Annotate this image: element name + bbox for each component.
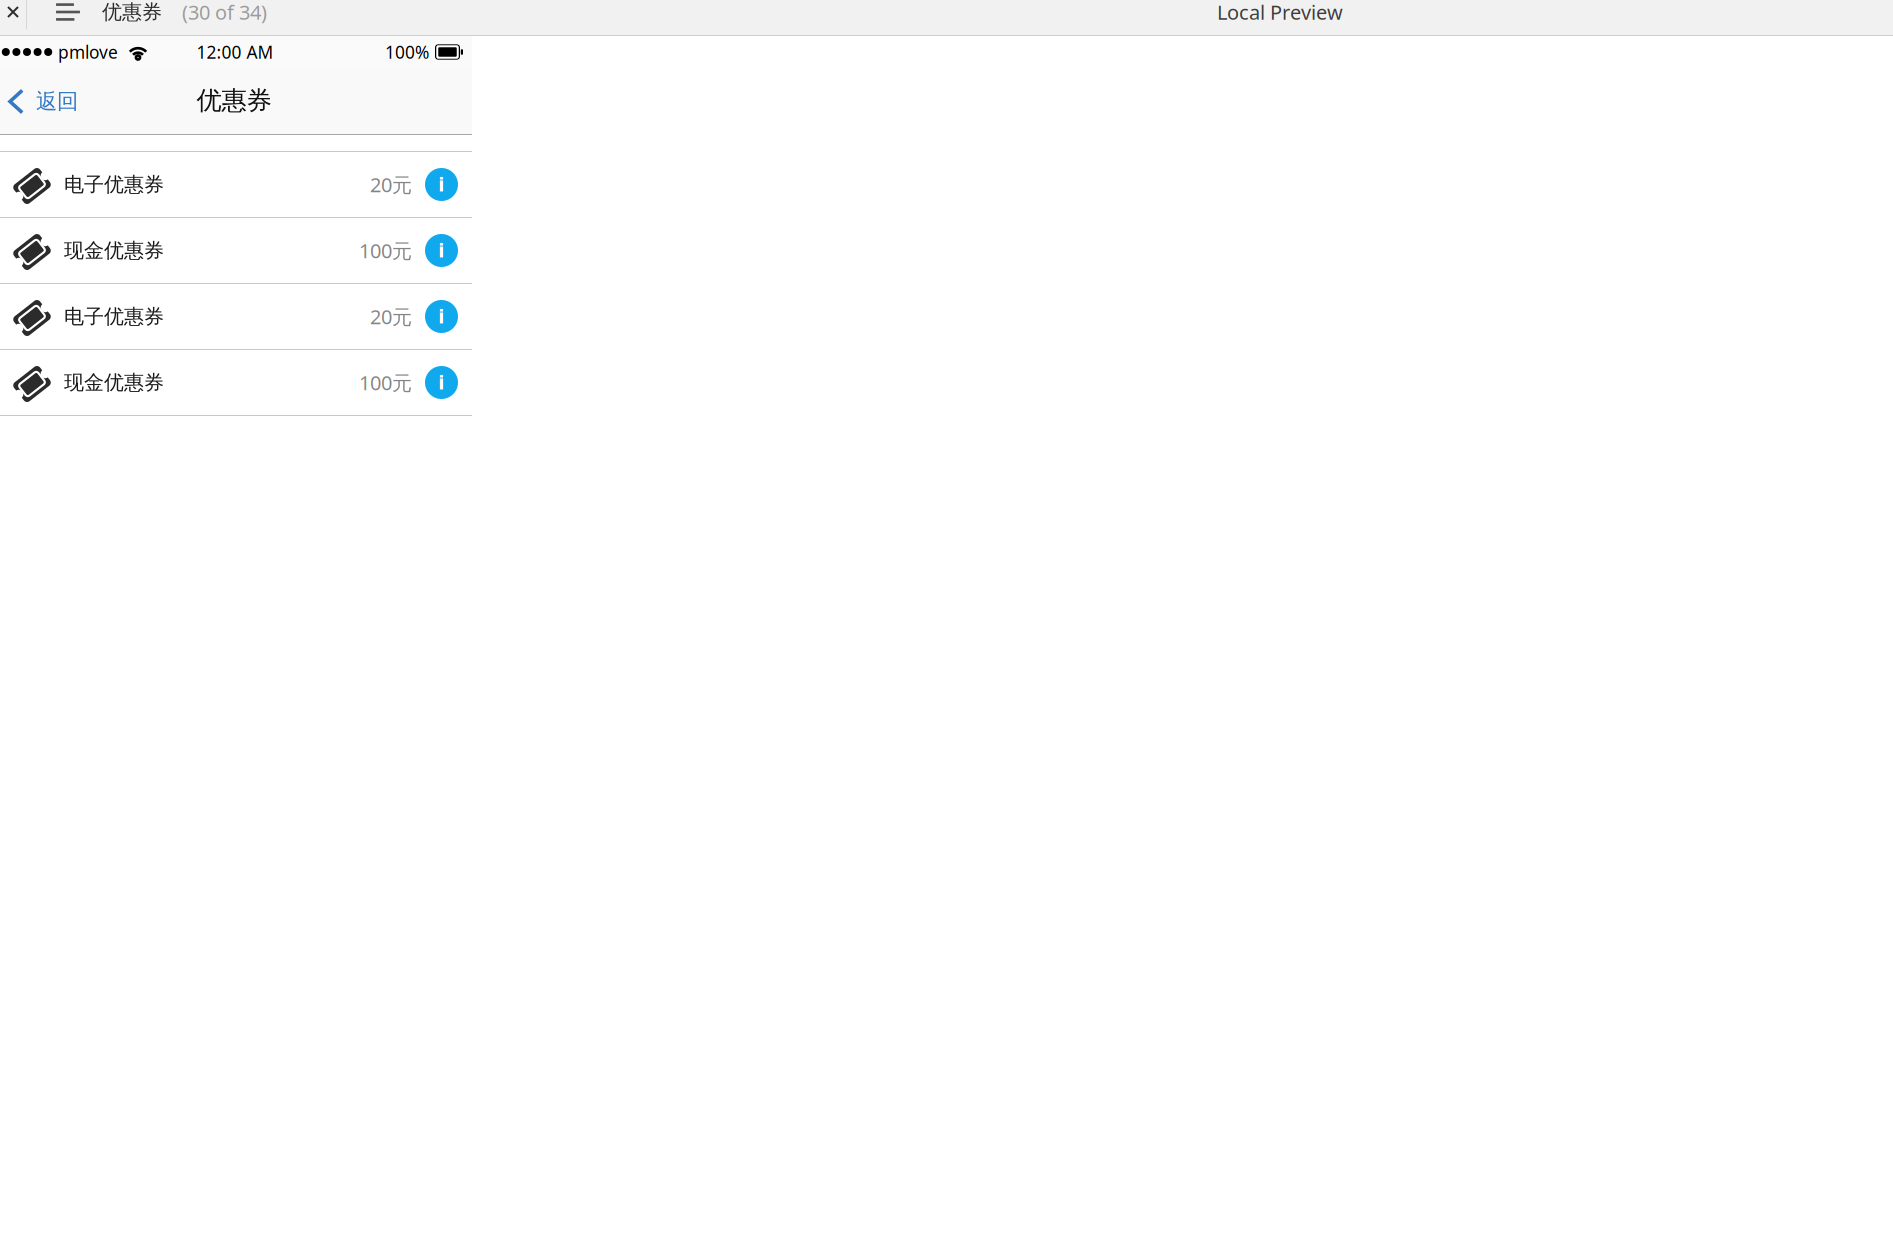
staticText: 100元: [359, 369, 412, 396]
staticText: 现金优惠券: [64, 370, 164, 395]
staticText: 20元: [370, 171, 412, 198]
staticText: 优惠券: [102, 0, 162, 24]
staticText: 电子优惠券: [64, 304, 164, 329]
button[interactable]: 返回: [0, 76, 78, 126]
button[interactable]: More info: [412, 234, 472, 267]
button[interactable]: More info: [412, 300, 472, 333]
staticText: 返回: [36, 88, 78, 115]
staticText: 优惠券: [196, 85, 271, 116]
button[interactable]: Table of contents: [27, 0, 102, 24]
button[interactable]: 现金优惠券: [0, 218, 472, 283]
staticText: 100%: [385, 40, 429, 63]
button[interactable]: More info: [412, 168, 472, 201]
button[interactable]: 优惠券: [102, 0, 267, 24]
button[interactable]: 电子优惠券: [0, 284, 472, 349]
staticText: 20元: [370, 303, 412, 330]
button[interactable]: 现金优惠券: [0, 350, 472, 415]
staticText: (30 of 34): [162, 0, 267, 25]
staticText: 12:00 AM: [196, 40, 273, 63]
staticText: 100元: [359, 237, 412, 264]
staticText: 现金优惠券: [64, 238, 164, 263]
staticText: Local Preview: [1217, 0, 1343, 25]
staticText: 电子优惠券: [64, 172, 164, 197]
button[interactable]: Close: [0, 0, 26, 24]
button[interactable]: More info: [412, 366, 472, 399]
button[interactable]: 电子优惠券: [0, 152, 472, 217]
staticText: pmlove: [58, 40, 118, 63]
